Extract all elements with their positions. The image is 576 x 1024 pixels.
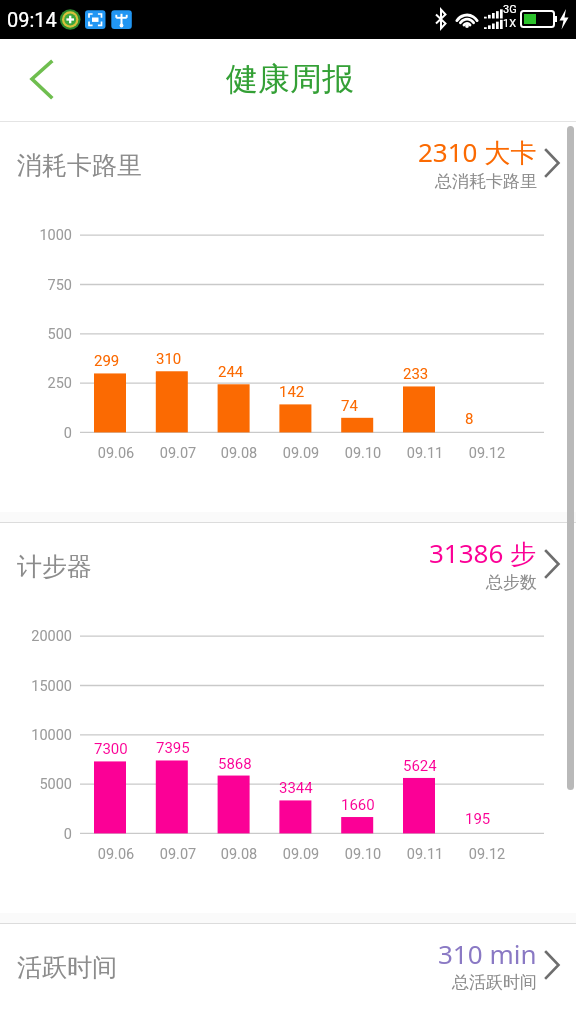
staticText: 5624 <box>403 757 437 775</box>
staticText: 8 <box>465 410 474 428</box>
staticText: 310 <box>156 350 182 368</box>
staticText: 09.09 <box>261 445 341 462</box>
staticText: 15000 <box>0 678 72 695</box>
staticText: 09.07 <box>138 445 218 462</box>
staticText: 3344 <box>279 779 313 797</box>
staticText: 1X <box>503 17 517 30</box>
other: Open 消耗卡路里 detail <box>540 142 568 178</box>
staticText: 09:14 <box>7 8 57 31</box>
staticText: 500 <box>0 326 72 343</box>
button[interactable]: 消耗卡路里 <box>0 122 576 214</box>
staticText: 09.11 <box>385 846 465 863</box>
staticText: 31386 步 <box>429 535 537 571</box>
staticText: 195 <box>465 810 491 828</box>
staticText: 09.06 <box>76 445 156 462</box>
staticText: 09.12 <box>447 445 527 462</box>
staticText: 09.12 <box>447 846 527 863</box>
staticText: 健康周报 <box>226 59 354 99</box>
button[interactable]: 活跃时间 <box>0 924 576 1016</box>
staticText: 7395 <box>156 739 190 757</box>
staticText: 5000 <box>0 776 72 793</box>
staticText: 250 <box>0 375 72 392</box>
staticText: 0 <box>0 425 72 442</box>
staticText: 09.08 <box>199 846 279 863</box>
other: Open 计步器 detail <box>540 543 568 579</box>
staticText: 10000 <box>0 727 72 744</box>
staticText: 0 <box>0 826 72 843</box>
button[interactable]: Back <box>14 58 64 106</box>
staticText: 5868 <box>218 755 252 773</box>
staticText: 750 <box>0 277 72 294</box>
staticText: 消耗卡路里 <box>17 150 142 181</box>
staticText: 09.06 <box>76 846 156 863</box>
staticText: 20000 <box>0 628 72 645</box>
staticText: 7300 <box>94 740 128 758</box>
staticText: 09.09 <box>261 846 341 863</box>
staticText: 总活跃时间 <box>452 972 537 993</box>
staticText: 233 <box>403 365 429 383</box>
staticText: 142 <box>279 383 305 401</box>
staticText: 总消耗卡路里 <box>435 171 537 192</box>
staticText: 3G <box>503 3 517 16</box>
staticText: 310 min <box>438 936 537 971</box>
staticText: 活跃时间 <box>17 952 117 983</box>
staticText: 1000 <box>0 227 72 244</box>
staticText: 计步器 <box>17 551 92 582</box>
other: Open 活跃时间 detail <box>540 944 568 980</box>
button[interactable]: 计步器 <box>0 523 576 615</box>
staticText: 2310 大卡 <box>418 134 537 170</box>
staticText: 299 <box>94 352 120 370</box>
staticText: 09.10 <box>323 445 403 462</box>
staticText: 09.07 <box>138 846 218 863</box>
staticText: 09.08 <box>199 445 279 462</box>
staticText: 09.11 <box>385 445 465 462</box>
staticText: 总步数 <box>486 572 537 593</box>
staticText: 244 <box>218 363 244 381</box>
staticText: 09.10 <box>323 846 403 863</box>
staticText: 1660 <box>341 796 375 814</box>
staticText: 74 <box>341 397 358 415</box>
